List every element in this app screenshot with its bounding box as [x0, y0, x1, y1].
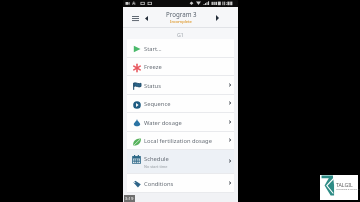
- staticText: Incomplete: [170, 19, 192, 25]
- button[interactable]: Status: [127, 76, 234, 95]
- staticText: Start...: [144, 45, 162, 53]
- staticText: Sequence: [144, 100, 171, 108]
- staticText: Water dosage: [144, 119, 182, 127]
- button[interactable]: Conditions: [127, 174, 234, 193]
- button[interactable]: Sequence: [127, 95, 234, 113]
- staticText: TALGIL: [336, 181, 353, 188]
- staticText: Local fertilization dosage: [144, 137, 212, 145]
- staticText: Conditions: [144, 180, 174, 188]
- staticText: Schedule: [144, 155, 169, 163]
- staticText: Freeze: [144, 63, 162, 71]
- button[interactable]: Start...: [127, 39, 234, 58]
- staticText: computing & control ltd.: [336, 188, 360, 191]
- staticText: Program 3: [166, 10, 197, 18]
- staticText: G1: [177, 31, 184, 38]
- button[interactable]: Water dosage: [127, 113, 234, 132]
- button[interactable]: Local fertilization dosage: [127, 132, 234, 150]
- button[interactable]: Menu: [129, 12, 141, 24]
- staticText: 3:19: [125, 196, 134, 202]
- staticText: Status: [144, 82, 161, 90]
- button[interactable]: Schedule: [127, 150, 234, 174]
- button[interactable]: Freeze: [127, 58, 234, 76]
- button[interactable]: Previous program: [140, 12, 152, 24]
- button[interactable]: Next program: [211, 12, 223, 24]
- staticText: No start time: [144, 164, 168, 169]
